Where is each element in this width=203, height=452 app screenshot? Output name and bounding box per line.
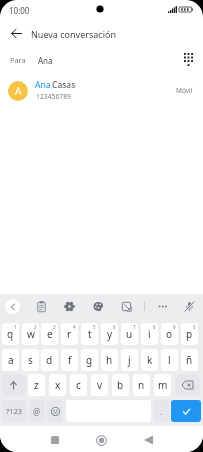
staticText: 0 (193, 324, 196, 330)
button[interactable]: Emoticonos (47, 400, 63, 422)
button[interactable]: a (2, 349, 19, 371)
button[interactable]: s (22, 349, 39, 371)
button[interactable]: . (154, 400, 169, 422)
button[interactable]: Ajustes (60, 297, 78, 315)
button[interactable]: @ (29, 400, 45, 422)
staticText: n (138, 378, 145, 392)
staticText: Ana (38, 55, 53, 66)
staticText: 8 (153, 324, 156, 330)
staticText: y (107, 327, 113, 341)
button[interactable]: Aceptar (171, 400, 201, 422)
button[interactable]: v (91, 374, 108, 396)
button[interactable]: Stickers (117, 297, 135, 315)
button[interactable]: t (81, 323, 98, 345)
staticText: f (68, 353, 72, 367)
staticText: 6 (113, 324, 116, 330)
button[interactable]: Mayúsculas (2, 374, 25, 396)
staticText: 5 (93, 324, 96, 330)
staticText: z (34, 378, 39, 392)
staticText: Para (10, 55, 26, 65)
staticText: 9 (173, 324, 176, 330)
button[interactable]: o (161, 323, 178, 345)
staticText: ?123 (6, 406, 23, 416)
button[interactable]: i (141, 323, 158, 345)
button[interactable]: q (2, 323, 19, 345)
button[interactable]: h (101, 349, 118, 371)
button[interactable]: k (141, 349, 158, 371)
button[interactable]: Inicio (90, 429, 112, 451)
staticText: r (67, 327, 72, 341)
button[interactable]: e (41, 323, 58, 345)
staticText: x (55, 378, 61, 392)
staticText: i (148, 327, 151, 341)
staticText: 3 (53, 324, 56, 330)
button[interactable]: Atrás (5, 22, 27, 44)
button[interactable]: j (121, 349, 138, 371)
staticText: b (117, 378, 124, 392)
button[interactable]: d (41, 349, 58, 371)
button[interactable]: ?123 (2, 400, 26, 422)
button[interactable]: y (101, 323, 118, 345)
staticText: c (76, 378, 81, 392)
staticText: w (27, 327, 35, 341)
button[interactable]: w (22, 323, 39, 345)
staticText: j (128, 353, 131, 367)
button[interactable]: Atrás (137, 429, 159, 451)
button[interactable]: u (121, 323, 138, 345)
staticText: v (97, 378, 103, 392)
staticText: Móvil (176, 86, 193, 95)
button[interactable]: g (81, 349, 98, 371)
staticText: 1 (14, 324, 17, 330)
button[interactable]: Micrófono desactivado (180, 297, 198, 315)
button[interactable]: m (154, 374, 171, 396)
staticText: 123456789 (36, 92, 71, 101)
staticText: e (47, 327, 53, 341)
staticText: h (106, 353, 113, 367)
button[interactable]: c (70, 374, 87, 396)
button[interactable]: Emoticonos (89, 297, 107, 315)
button[interactable]: p (181, 323, 198, 345)
button[interactable]: Aplicaciones recientes (44, 429, 66, 451)
staticText: p (186, 327, 193, 341)
button[interactable]: Teclado de marcación (178, 49, 198, 69)
staticText: s (28, 353, 33, 367)
staticText: q (7, 327, 14, 341)
staticText: 10:00 (9, 5, 30, 16)
button[interactable]: Atrás (5, 299, 20, 314)
button[interactable]: Borrar (175, 374, 200, 396)
button[interactable]: r (61, 323, 78, 345)
staticText: 7 (133, 324, 136, 330)
staticText: A (15, 84, 22, 98)
staticText: t (88, 327, 92, 341)
staticText: 4 (73, 324, 76, 330)
staticText: . (160, 406, 163, 417)
staticText: Casas (52, 79, 76, 91)
staticText: 2 (34, 324, 37, 330)
staticText: Ana (35, 79, 51, 91)
staticText: g (86, 353, 93, 367)
button[interactable]: Portapapeles (32, 297, 50, 315)
button[interactable]: ñ (181, 349, 198, 371)
staticText: l (168, 353, 171, 367)
staticText: ñ (186, 353, 193, 367)
staticText: @ (33, 406, 41, 417)
staticText: u (126, 327, 133, 341)
staticText: a (8, 353, 14, 367)
button[interactable]: Más opciones (153, 297, 171, 315)
staticText: m (158, 378, 168, 392)
staticText: o (166, 327, 173, 341)
button[interactable]: l (161, 349, 178, 371)
staticText: d (46, 353, 53, 367)
button[interactable]: z (28, 374, 45, 396)
staticText: k (147, 353, 153, 367)
button[interactable]: f (61, 349, 78, 371)
staticText: Nueva conversación (31, 28, 116, 40)
button[interactable]: x (49, 374, 66, 396)
button[interactable]: A (0, 75, 203, 107)
button[interactable]: n (133, 374, 150, 396)
button[interactable]: b (112, 374, 129, 396)
